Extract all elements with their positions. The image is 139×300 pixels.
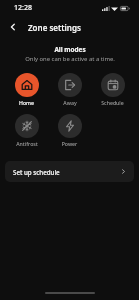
staticText: Set up schedule <box>13 168 60 176</box>
button[interactable]: Schedule <box>97 73 128 106</box>
button[interactable]: Away <box>54 73 85 106</box>
staticText: Away <box>63 99 77 106</box>
staticText: All modes <box>54 45 86 54</box>
staticText: Only one can be active at a time. <box>25 55 115 63</box>
staticText: 12:28 <box>14 3 32 13</box>
button[interactable]: Back <box>3 17 23 37</box>
button[interactable]: Antifrost <box>11 114 42 147</box>
button[interactable]: Set up schedule <box>5 161 134 182</box>
button[interactable]: Power regulation <box>54 114 85 147</box>
staticText: Schedule <box>101 99 124 106</box>
staticText: Zone settings <box>28 22 81 33</box>
button[interactable]: Home <box>11 73 42 106</box>
staticText: Power regulation <box>54 140 85 147</box>
staticText: Antifrost <box>16 140 38 147</box>
staticText: Home <box>19 99 34 106</box>
